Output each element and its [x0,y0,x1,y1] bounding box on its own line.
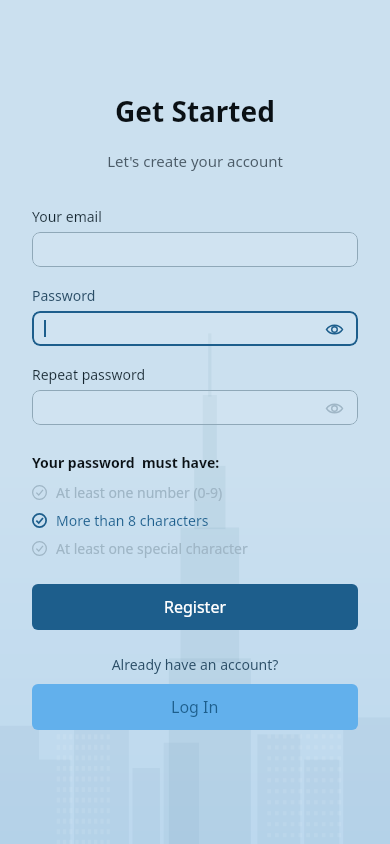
button[interactable]: Show password [32,311,358,346]
staticText: Password [32,286,96,305]
staticText: Log In [171,696,219,718]
staticText: Register [164,596,227,618]
staticText: Already have an account? [32,655,358,674]
staticText: Get Started [0,92,390,130]
button[interactable]: Log In [32,684,358,730]
staticText: Your password must have: [32,453,220,472]
staticText: More than 8 characters [56,511,209,530]
button[interactable]: More than 8 characters [32,511,358,530]
button[interactable]: At least one special character [32,539,358,558]
staticText: Repeat password [32,365,146,384]
staticText: Your email [32,207,102,226]
button[interactable] [32,232,358,267]
button[interactable]: Show password [32,390,358,425]
staticText: At least one special character [56,539,248,558]
button[interactable]: Register [32,584,358,630]
button[interactable]: Show password [322,317,346,341]
button[interactable]: At least one number (0-9) [32,483,358,502]
staticText: Let's create your account [0,151,390,171]
staticText: At least one number (0-9) [56,483,223,502]
button[interactable]: Show password [322,396,346,420]
